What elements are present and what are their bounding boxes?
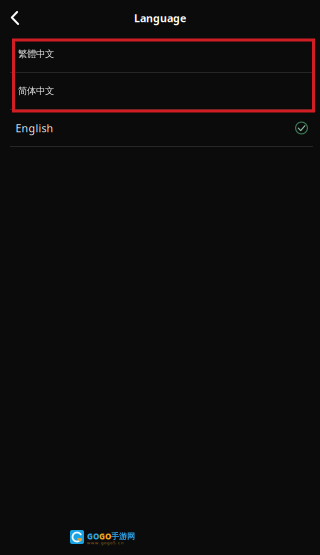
button[interactable]: Back	[0, 0, 30, 36]
button[interactable]: 繁體中文	[0, 36, 320, 72]
staticText: GO	[99, 531, 111, 542]
staticText: 繁體中文	[18, 48, 54, 60]
button[interactable]: 简体中文	[0, 73, 320, 109]
staticText: GO	[87, 531, 99, 542]
button[interactable]: English	[0, 110, 320, 146]
staticText: English	[15, 121, 53, 135]
staticText: w w w . g o g o 5 . c n	[87, 540, 123, 545]
staticText: Language	[134, 11, 186, 25]
staticText: 简体中文	[18, 85, 54, 97]
staticText: 手游网	[111, 531, 135, 541]
